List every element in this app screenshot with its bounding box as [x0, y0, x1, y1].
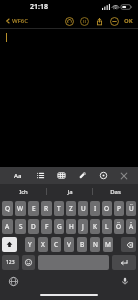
button[interactable]: Attach [75, 169, 90, 182]
button[interactable]: N [90, 237, 100, 252]
button[interactable]: Close keyboard [117, 169, 131, 183]
staticText: Q [5, 204, 11, 213]
staticText: F [45, 222, 49, 231]
button[interactable]: M [103, 237, 113, 252]
button[interactable]: Share [94, 16, 104, 26]
button[interactable]: 123 [2, 255, 19, 270]
button[interactable]: Ö [114, 219, 124, 234]
staticText: Z [69, 204, 73, 213]
staticText: A [5, 222, 10, 231]
button[interactable]: Camera [96, 169, 111, 182]
button[interactable]: X [38, 237, 48, 252]
staticText: B [80, 240, 85, 249]
staticText: R [44, 204, 49, 213]
button[interactable]: K [90, 219, 100, 234]
staticText: Aa [14, 172, 22, 180]
staticText: L [105, 222, 109, 231]
staticText: T [57, 204, 61, 213]
button[interactable]: S [15, 219, 26, 234]
staticText: J [82, 222, 84, 231]
button[interactable]: Change keyboard [7, 275, 19, 287]
staticText: N [93, 240, 98, 249]
button[interactable]: V [64, 237, 74, 252]
staticText: G [57, 222, 62, 231]
button[interactable]: W [15, 201, 26, 216]
staticText: OK [124, 17, 133, 25]
button[interactable]: F [41, 219, 52, 234]
button[interactable]: Emoji [22, 255, 35, 270]
button[interactable]: G [54, 219, 64, 234]
staticText: Ich [19, 188, 28, 196]
button[interactable]: P [114, 201, 124, 216]
button[interactable]: U [78, 201, 88, 216]
button[interactable]: Ich [0, 184, 46, 199]
button[interactable]: C [51, 237, 61, 252]
button[interactable]: Ä [126, 219, 136, 234]
button[interactable]: Q [2, 201, 13, 216]
staticText: M [105, 240, 111, 249]
staticText: O [104, 204, 110, 213]
button[interactable]: Y [25, 237, 35, 252]
button[interactable]: More [109, 16, 119, 26]
button[interactable]: O [102, 201, 112, 216]
staticText: P [117, 204, 121, 213]
staticText: U [81, 204, 86, 213]
button[interactable]: Z [66, 201, 76, 216]
staticText: Ä [129, 222, 134, 231]
staticText: Ü [129, 204, 134, 213]
button[interactable]: H [66, 219, 76, 234]
button[interactable]: T [54, 201, 64, 216]
staticText: W [17, 204, 24, 213]
staticText: X [41, 240, 45, 249]
staticText: 123 [6, 259, 15, 266]
button[interactable]: Undo [64, 16, 74, 26]
staticText: WF6C [12, 17, 29, 25]
button[interactable]: Ja [47, 184, 92, 199]
button[interactable]: E [28, 201, 39, 216]
button[interactable]: OK [123, 17, 134, 25]
staticText: Y [28, 240, 32, 249]
button[interactable]: I [90, 201, 100, 216]
button[interactable]: Ü [126, 201, 136, 216]
staticText: K [93, 222, 98, 231]
button[interactable]: Text format [10, 169, 26, 182]
staticText: H [69, 222, 74, 231]
button[interactable]: Pause [79, 16, 89, 26]
staticText: Das [110, 188, 121, 196]
staticText: Ja [67, 188, 73, 196]
staticText: D [31, 222, 36, 231]
button[interactable]: B [77, 237, 87, 252]
staticText: E [32, 204, 36, 213]
button[interactable]: R [41, 201, 52, 216]
button[interactable]: Table [54, 169, 69, 182]
button[interactable]: WF6C [4, 17, 30, 25]
staticText: S [19, 222, 23, 231]
button[interactable]: D [28, 219, 39, 234]
staticText: C [54, 240, 59, 249]
button[interactable]: Checklist [33, 169, 48, 182]
staticText: 21:18 [30, 2, 48, 12]
staticText: I [94, 204, 97, 213]
button[interactable]: Return [112, 255, 136, 270]
button[interactable]: L [102, 219, 112, 234]
button[interactable]: Shift [2, 237, 17, 252]
button[interactable]: Backspace [121, 237, 136, 252]
staticText: Ö [116, 222, 122, 231]
button[interactable]: Dictate [119, 275, 131, 287]
button[interactable]: J [78, 219, 88, 234]
button[interactable]: Das [93, 184, 138, 199]
staticText: V [67, 240, 71, 249]
button[interactable]: A [2, 219, 13, 234]
